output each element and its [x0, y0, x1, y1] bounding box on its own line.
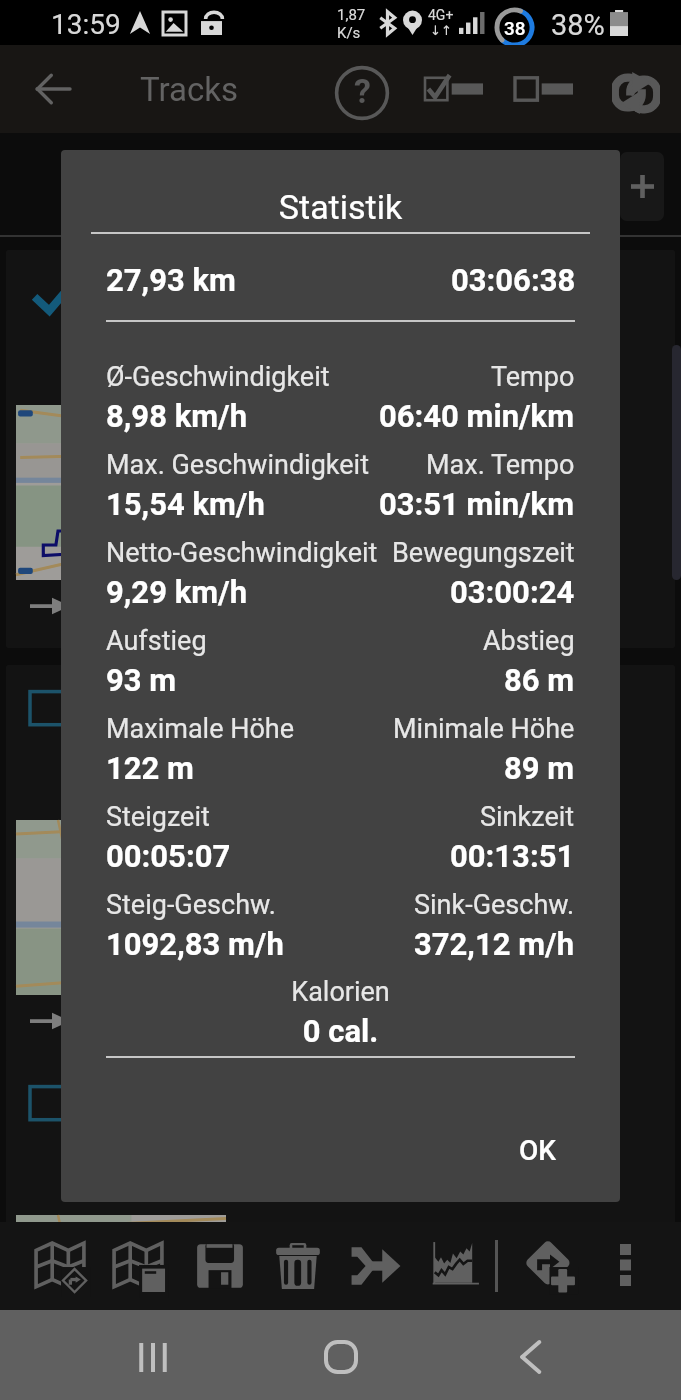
staticText: Bewegungszeit [392, 537, 575, 569]
button[interactable]: Save [186, 1232, 254, 1300]
staticText: 93 m [106, 662, 177, 698]
staticText: Aufstieg [106, 625, 207, 657]
button[interactable]: Select all [412, 67, 496, 111]
staticText: 86 m [504, 662, 575, 698]
staticText: 8,98 km/h [106, 398, 248, 434]
staticText: 10.59 km [501, 1338, 616, 1370]
staticText: Steig-Geschw. [106, 889, 276, 921]
staticText: Statistik [61, 187, 620, 227]
staticText: 13:59 [51, 8, 121, 41]
staticText: Sink-Geschw. [414, 889, 575, 921]
staticText: 122 m [106, 750, 194, 786]
staticText: OK [519, 1134, 556, 1167]
button[interactable]: More options [596, 1236, 654, 1294]
button[interactable]: Refresh [600, 57, 672, 129]
staticText: Maximale Höhe [106, 713, 295, 745]
staticText: 0 cal. [106, 1013, 575, 1049]
staticText: 1092,83 m/h [106, 926, 284, 962]
staticText: 38% [551, 8, 605, 42]
staticText: Abstieg [483, 625, 575, 657]
button[interactable]: Back [17, 53, 89, 125]
staticText: 00:13:51 [450, 838, 575, 874]
staticText: ↓↑ [430, 23, 452, 38]
staticText: 89 m [504, 750, 575, 786]
button[interactable]: Frankfurt Nord [6, 250, 675, 648]
button[interactable]: Select none [502, 67, 586, 111]
staticText: 03:00:24 [450, 574, 575, 610]
staticText: Steigzeit [106, 801, 210, 833]
staticText: Tempo [491, 361, 575, 393]
staticText: 27,93 km [106, 262, 236, 298]
button[interactable]: Strecke [6, 1060, 675, 1400]
button[interactable]: Map layers [104, 1232, 172, 1300]
staticText: 00:05:07 [106, 838, 231, 874]
button[interactable]: OK [489, 1114, 586, 1187]
staticText: Ø-Geschwindigkeit [106, 361, 330, 393]
staticText: K/s [337, 24, 361, 42]
staticText: Minimale Höhe [393, 713, 575, 745]
button[interactable]: Frankfurt Mitte [6, 665, 675, 1063]
staticText: 03:51 min/km [379, 486, 575, 522]
staticText: Frankfurt Nord [98, 276, 273, 308]
staticText: 372,12 m/h [414, 926, 575, 962]
button[interactable]: Statistics [420, 1232, 488, 1300]
staticText: Strecke [196, 528, 289, 560]
button[interactable]: Delete [264, 1232, 332, 1300]
button[interactable]: Add track [620, 152, 664, 221]
button[interactable]: Help [327, 58, 397, 128]
staticText: ? [354, 71, 371, 111]
staticText: Tracks [140, 70, 239, 109]
staticText: 1,87 [337, 6, 366, 24]
staticText: Sinkzeit [480, 801, 575, 833]
staticText: Max. Tempo [426, 449, 575, 481]
staticText: 9,29 km/h [106, 574, 248, 610]
staticText: 03:06:38 [451, 262, 576, 298]
staticText: Kalorien [106, 976, 575, 1008]
staticText: 4G+ [428, 7, 454, 23]
button[interactable]: Recents [118, 1322, 188, 1392]
staticText: 38 [504, 17, 526, 39]
button[interactable]: Add route [516, 1232, 584, 1300]
staticText: 06:40 min/km [379, 398, 575, 434]
button[interactable]: Show map [26, 1232, 94, 1300]
staticText: Max. Geschwindigkeit [106, 449, 369, 481]
staticText: 27,93 km [502, 528, 616, 560]
staticText: 14,82 km [502, 943, 616, 975]
button[interactable]: Home [306, 1322, 376, 1392]
button[interactable]: Back [496, 1322, 566, 1392]
staticText: Netto-Geschwindigkeit [106, 537, 378, 569]
staticText: Frankfurt Mitte [98, 691, 277, 723]
staticText: 15,54 km/h [106, 486, 265, 522]
button[interactable]: Merge [342, 1232, 410, 1300]
staticText: Strecke [196, 943, 289, 975]
